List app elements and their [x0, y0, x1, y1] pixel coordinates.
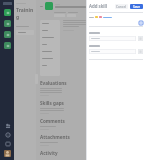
button[interactable]: Module 3 — [4, 31, 11, 38]
staticText: Training — [16, 7, 34, 21]
button[interactable]: Account — [4, 150, 11, 157]
button[interactable]: Save — [130, 4, 143, 9]
button[interactable]: Pick — [139, 21, 143, 25]
staticText: Save — [133, 5, 141, 9]
button[interactable]: Users — [4, 122, 11, 129]
staticText: Activity — [40, 150, 58, 156]
button[interactable]: Expiration date — [89, 49, 136, 54]
button[interactable]: App — [45, 2, 53, 10]
staticText: Cancel — [116, 5, 127, 9]
button[interactable]: Module 1 — [4, 9, 11, 16]
button[interactable] — [16, 30, 34, 35]
button[interactable]: Open Expiration date picker — [138, 49, 143, 54]
button[interactable] — [42, 51, 58, 52]
staticText: Add skill — [89, 3, 108, 9]
button[interactable]: Module 2 — [4, 20, 11, 27]
button[interactable] — [42, 30, 58, 31]
button[interactable]: Open Proficiency picker — [138, 36, 143, 41]
button[interactable] — [42, 65, 58, 66]
button[interactable]: Module 4 — [4, 42, 11, 49]
button[interactable]: Proficiency — [89, 36, 136, 41]
button[interactable]: Settings — [4, 131, 11, 138]
button[interactable]: Help — [4, 140, 11, 147]
button[interactable]: Cancel — [115, 4, 128, 9]
button[interactable] — [42, 37, 58, 38]
staticText: Evaluations — [40, 80, 67, 86]
staticText: Skills gaps — [40, 100, 64, 106]
staticText: Comments — [40, 118, 65, 124]
button[interactable] — [42, 58, 58, 59]
staticText: Attachments — [40, 134, 70, 140]
button[interactable] — [42, 23, 58, 24]
button[interactable] — [42, 44, 58, 45]
